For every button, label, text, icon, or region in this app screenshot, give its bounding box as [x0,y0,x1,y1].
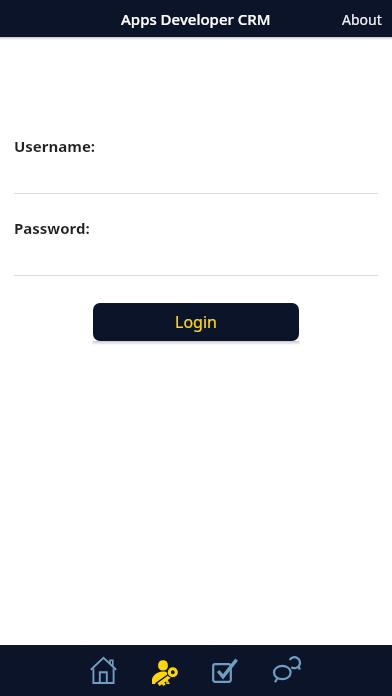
button[interactable]: Login [93,303,299,341]
staticText: Username: [14,136,96,156]
staticText: Login [175,311,217,333]
staticText: About [342,10,382,29]
button[interactable] [73,645,134,696]
staticText: Apps Developer CRM [121,9,271,29]
button[interactable] [195,645,256,696]
button[interactable] [134,645,195,696]
staticText: Password: [14,218,90,238]
button[interactable] [256,645,317,696]
button[interactable]: About [332,0,392,37]
